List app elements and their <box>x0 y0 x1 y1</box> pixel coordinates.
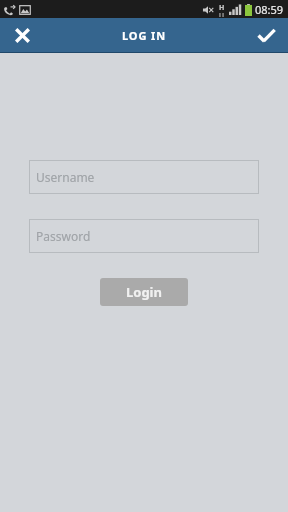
staticText: H <box>219 3 225 13</box>
button[interactable]: Confirm <box>244 18 288 53</box>
button[interactable]: Password <box>29 219 259 253</box>
button[interactable]: Login <box>100 278 188 306</box>
staticText: Login <box>126 283 162 301</box>
staticText: Username <box>36 169 95 185</box>
button[interactable]: Username <box>29 160 259 194</box>
button[interactable]: Close <box>0 18 44 53</box>
staticText: LOG IN <box>122 28 167 43</box>
staticText: Password <box>36 228 91 244</box>
staticText: 08:59 <box>255 2 284 17</box>
